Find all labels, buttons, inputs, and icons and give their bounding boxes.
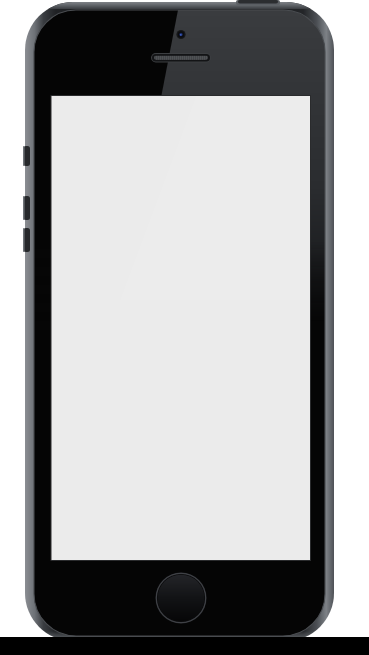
button[interactable]: Home (156, 573, 207, 624)
